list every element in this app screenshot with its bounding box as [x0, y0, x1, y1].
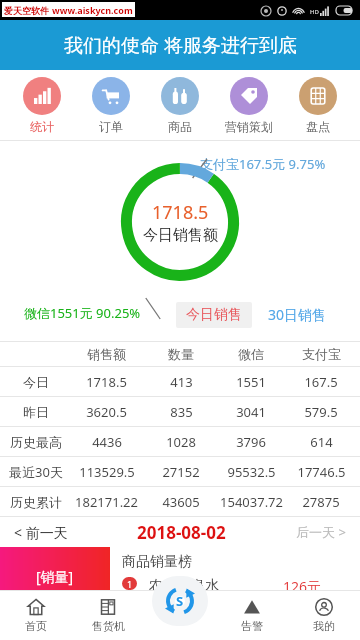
staticText: 1718.5 [86, 373, 127, 391]
button[interactable]: 30日销售 [262, 301, 333, 328]
staticText: 43605 [162, 493, 200, 511]
staticText: 154037.72 [220, 493, 283, 511]
button[interactable]: 1 [122, 577, 346, 590]
staticText: 我们的使命 将服务进行到底 [64, 32, 297, 58]
staticText: 首页 [25, 619, 47, 633]
staticText: [销量] [36, 567, 74, 586]
button[interactable]: Refresh sales [152, 576, 208, 626]
button[interactable]: 最近30天 [4, 457, 356, 486]
staticText: 爱天空软件 [4, 5, 49, 16]
staticText: 1718.5 [152, 200, 209, 225]
staticText: www.aiskycn.com [52, 4, 133, 16]
staticText: 95532.5 [227, 463, 276, 481]
button[interactable]: 后一天 > [294, 519, 348, 545]
staticText: 昨日 [23, 404, 49, 420]
staticText: 27875 [302, 493, 340, 511]
staticText: 历史最高 [10, 434, 62, 450]
staticText: 167.5 [304, 373, 338, 391]
staticText: 4436 [92, 433, 122, 451]
button[interactable]: < 前一天 [12, 519, 70, 546]
staticText: 今日 [23, 374, 49, 390]
staticText: 今日销售 [186, 306, 242, 324]
button[interactable]: 商品 [145, 70, 214, 140]
button[interactable]: 统计 [8, 70, 76, 140]
staticText: 27152 [162, 463, 200, 481]
staticText: 1 [127, 578, 133, 590]
button[interactable]: 营销策划 [214, 70, 283, 140]
staticText: 113529.5 [79, 463, 135, 481]
staticText: 413 [170, 373, 193, 391]
staticText: 2018-08-02 [137, 521, 226, 544]
staticText: 数量 [168, 346, 194, 362]
staticText: 今日销售额 [143, 226, 218, 245]
staticText: 后一天 > [296, 523, 346, 541]
staticText: 告警 [241, 619, 263, 633]
staticText: 3041 [236, 403, 266, 421]
staticText: 农夫山泉水 [149, 577, 219, 590]
staticText: 销售额 [87, 346, 126, 362]
button[interactable]: 告警 [216, 590, 288, 640]
staticText: 微信1551元 90.25% [24, 304, 141, 322]
staticText: 126元 [283, 577, 322, 590]
staticText: 支付宝167.5元 9.75% [200, 155, 326, 173]
staticText: < 前一天 [14, 523, 68, 542]
staticText: 17746.5 [297, 463, 346, 481]
button[interactable]: 我的 [288, 590, 360, 640]
staticText: 1028 [166, 433, 196, 451]
button[interactable]: [销量] [0, 547, 110, 590]
staticText: 3796 [236, 433, 266, 451]
staticText: 统计 [30, 119, 54, 134]
button[interactable]: 今日销售 [176, 302, 252, 328]
button[interactable]: 售货机 [72, 590, 144, 640]
staticText: 614 [310, 433, 333, 451]
button[interactable]: 历史最高 [4, 427, 356, 456]
staticText: 1551 [236, 373, 266, 391]
staticText: 微信 [238, 346, 264, 362]
staticText: S [176, 592, 184, 610]
staticText: 182171.22 [75, 493, 138, 511]
staticText: 30日销售 [268, 305, 327, 324]
staticText: 商品 [168, 119, 192, 134]
button[interactable]: 盘点 [283, 70, 352, 140]
staticText: 售货机 [92, 619, 125, 633]
staticText: 历史累计 [10, 494, 62, 510]
button[interactable]: 昨日 [4, 397, 356, 426]
staticText: 支付宝 [302, 346, 341, 362]
staticText: 3620.5 [86, 403, 127, 421]
staticText: 最近30天 [9, 463, 63, 481]
staticText: 营销策划 [225, 119, 273, 134]
staticText: 商品销量榜 [122, 553, 192, 571]
staticText: 盘点 [306, 119, 330, 134]
button[interactable]: 今日 [4, 367, 356, 396]
staticText: 579.5 [304, 403, 338, 421]
staticText: 我的 [313, 619, 335, 633]
staticText: 订单 [99, 119, 123, 134]
staticText: 835 [170, 403, 193, 421]
staticText: HD [310, 8, 319, 16]
button[interactable]: 首页 [0, 590, 72, 640]
button[interactable]: 订单 [76, 70, 145, 140]
button[interactable]: 历史累计 [4, 487, 356, 516]
